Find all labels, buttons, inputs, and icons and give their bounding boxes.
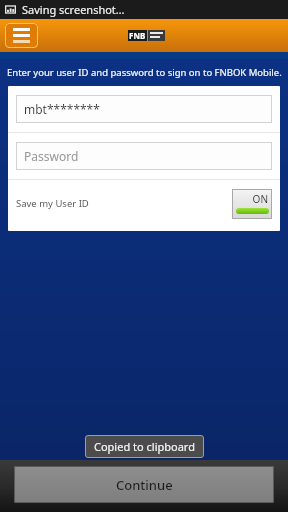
staticText: mbt********	[24, 101, 100, 117]
button[interactable]: mbt********	[16, 95, 272, 123]
button[interactable]: Save my User ID toggle, on	[232, 189, 272, 219]
staticText: FNB	[129, 30, 146, 41]
staticText: Continue	[116, 476, 173, 494]
button[interactable]: Password	[16, 142, 272, 170]
staticText: Save my User ID	[16, 197, 89, 210]
staticText: Password	[24, 148, 79, 164]
button[interactable]: Continue	[14, 466, 274, 503]
staticText: ON	[252, 192, 268, 206]
button[interactable]: Save my User ID	[8, 180, 280, 227]
staticText: Enter your user ID and password to sign …	[7, 66, 282, 79]
button[interactable]: Menu	[5, 23, 38, 48]
staticText: Saving screenshot…	[22, 2, 125, 17]
staticText: Copied to clipboard	[94, 439, 195, 454]
